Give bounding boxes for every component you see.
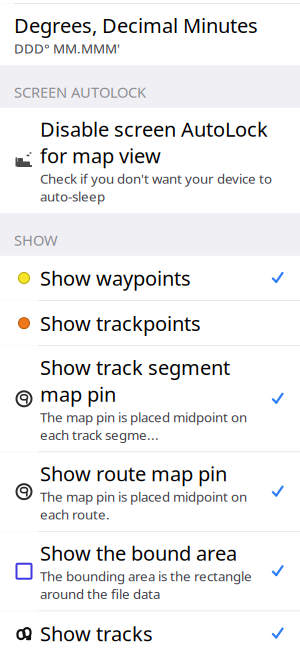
staticText: Degrees, Decimal Minutes [14, 12, 258, 39]
staticText: Show waypoints [40, 265, 191, 291]
staticText: Show trackpoints [40, 310, 201, 336]
staticText: SHOW [14, 230, 58, 250]
button[interactable]: Show trackpoints [0, 301, 300, 345]
staticText: The map pin is placed midpoint on each r… [40, 488, 247, 523]
button[interactable]: Show waypoints [0, 256, 300, 300]
staticText: Show route map pin [40, 460, 227, 487]
button[interactable]: Degrees, Decimal Minutes [0, 4, 300, 65]
staticText: Show the bound area [40, 540, 237, 566]
button[interactable]: Show the bound area [0, 532, 300, 611]
button[interactable]: Show tracks [0, 611, 300, 649]
staticText: DDD° MM.MMM' [14, 39, 120, 57]
staticText: Disable screen AutoLock for map view [40, 116, 268, 169]
staticText: SCREEN AUTOLOCK [14, 82, 146, 102]
staticText: Check if you don't want your device to a… [40, 170, 272, 205]
staticText: The bounding area is the rectangle aroun… [40, 567, 252, 603]
button[interactable]: Disable screen AutoLock for map view [0, 108, 300, 213]
staticText: Show tracks [40, 620, 153, 647]
button[interactable]: Show route map pin [0, 452, 300, 531]
button[interactable]: Show track segment map pin [0, 346, 300, 451]
staticText: Show track segment map pin [40, 354, 230, 407]
staticText: The map pin is placed midpoint on each t… [40, 408, 247, 444]
